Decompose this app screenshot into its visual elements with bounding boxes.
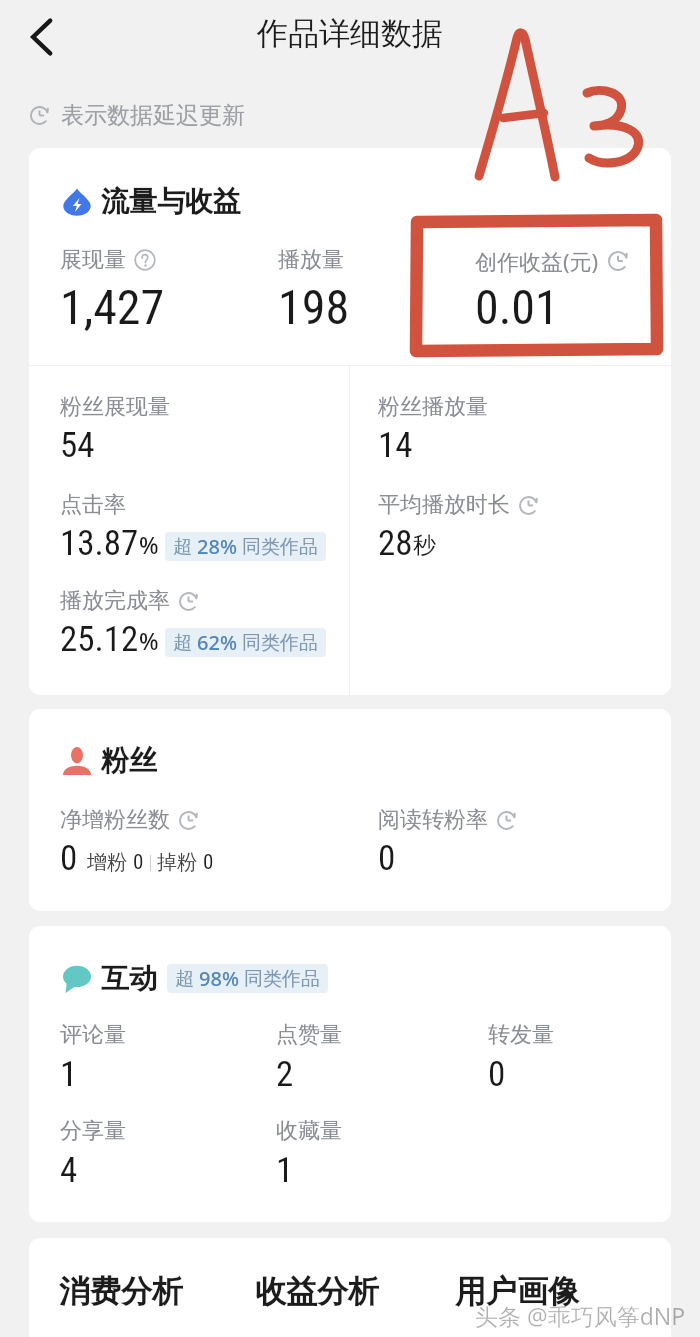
staticText: 掉粉	[157, 850, 197, 875]
staticText: 13.87	[60, 523, 139, 564]
staticText: 1,427	[60, 279, 165, 335]
staticText: 转发量	[488, 1021, 554, 1049]
staticText: 1	[276, 1150, 294, 1191]
staticText: 超	[175, 967, 194, 991]
staticText: 增粉	[87, 850, 127, 875]
staticText: 25.12	[60, 619, 139, 660]
staticText: 同类作品	[244, 967, 320, 991]
staticText: 消费分析	[59, 1272, 183, 1311]
button[interactable]: 超	[165, 532, 326, 561]
staticText: 98%	[199, 965, 239, 992]
staticText: 0	[203, 850, 214, 875]
staticText: 创作收益(元)	[475, 246, 599, 276]
staticText: 0	[488, 1054, 506, 1095]
staticText: 0.01	[475, 279, 559, 335]
staticText: 54	[60, 425, 95, 466]
staticText: 收益分析	[255, 1272, 379, 1311]
staticText: 流量与收益	[101, 184, 241, 219]
staticText: 分享量	[60, 1117, 126, 1145]
staticText: 平均播放时长	[378, 491, 510, 519]
staticText: 0	[133, 850, 144, 875]
staticText: 1	[60, 1054, 78, 1095]
staticText: 收藏量	[276, 1117, 342, 1145]
staticText: 评论量	[60, 1021, 126, 1049]
staticText: 同类作品	[242, 631, 318, 655]
staticText: 0	[60, 838, 78, 879]
staticText: 14	[378, 425, 413, 466]
button[interactable]: 用户画像	[455, 1260, 579, 1323]
staticText: 同类作品	[242, 535, 318, 559]
staticText: 秒	[413, 531, 436, 560]
staticText: 头条 @乖巧风筝dNP	[475, 1300, 686, 1331]
staticText: 62%	[197, 629, 237, 656]
staticText: 2	[276, 1054, 294, 1095]
staticText: 超	[173, 535, 192, 559]
staticText: 播放量	[278, 246, 344, 274]
staticText: 点赞量	[276, 1021, 342, 1049]
staticText: 粉丝播放量	[378, 393, 488, 421]
button[interactable]: 超	[167, 964, 328, 993]
button[interactable]: 消费分析	[59, 1260, 183, 1323]
button[interactable]: 收益分析	[255, 1260, 379, 1323]
staticText: 超	[173, 631, 192, 655]
button[interactable]: Back	[13, 10, 67, 64]
staticText: %	[139, 529, 159, 560]
staticText: 作品详细数据	[257, 14, 443, 53]
button[interactable]: 超	[165, 628, 326, 657]
staticText: 28%	[197, 533, 237, 560]
staticText: 播放完成率	[60, 587, 170, 615]
staticText: 互动	[101, 961, 157, 996]
staticText: 0	[378, 838, 396, 879]
staticText: 粉丝展现量	[60, 393, 170, 421]
staticText: 展现量	[60, 246, 126, 274]
staticText: 表示数据延迟更新	[61, 101, 245, 130]
staticText: 4	[60, 1150, 78, 1191]
staticText: %	[139, 625, 159, 656]
staticText: 净增粉丝数	[60, 806, 170, 834]
staticText: 点击率	[60, 491, 126, 519]
staticText: 198	[278, 279, 350, 335]
staticText: 粉丝	[101, 743, 157, 778]
staticText: 用户画像	[455, 1272, 579, 1311]
staticText: 28	[378, 523, 413, 564]
staticText: 阅读转粉率	[378, 806, 488, 834]
